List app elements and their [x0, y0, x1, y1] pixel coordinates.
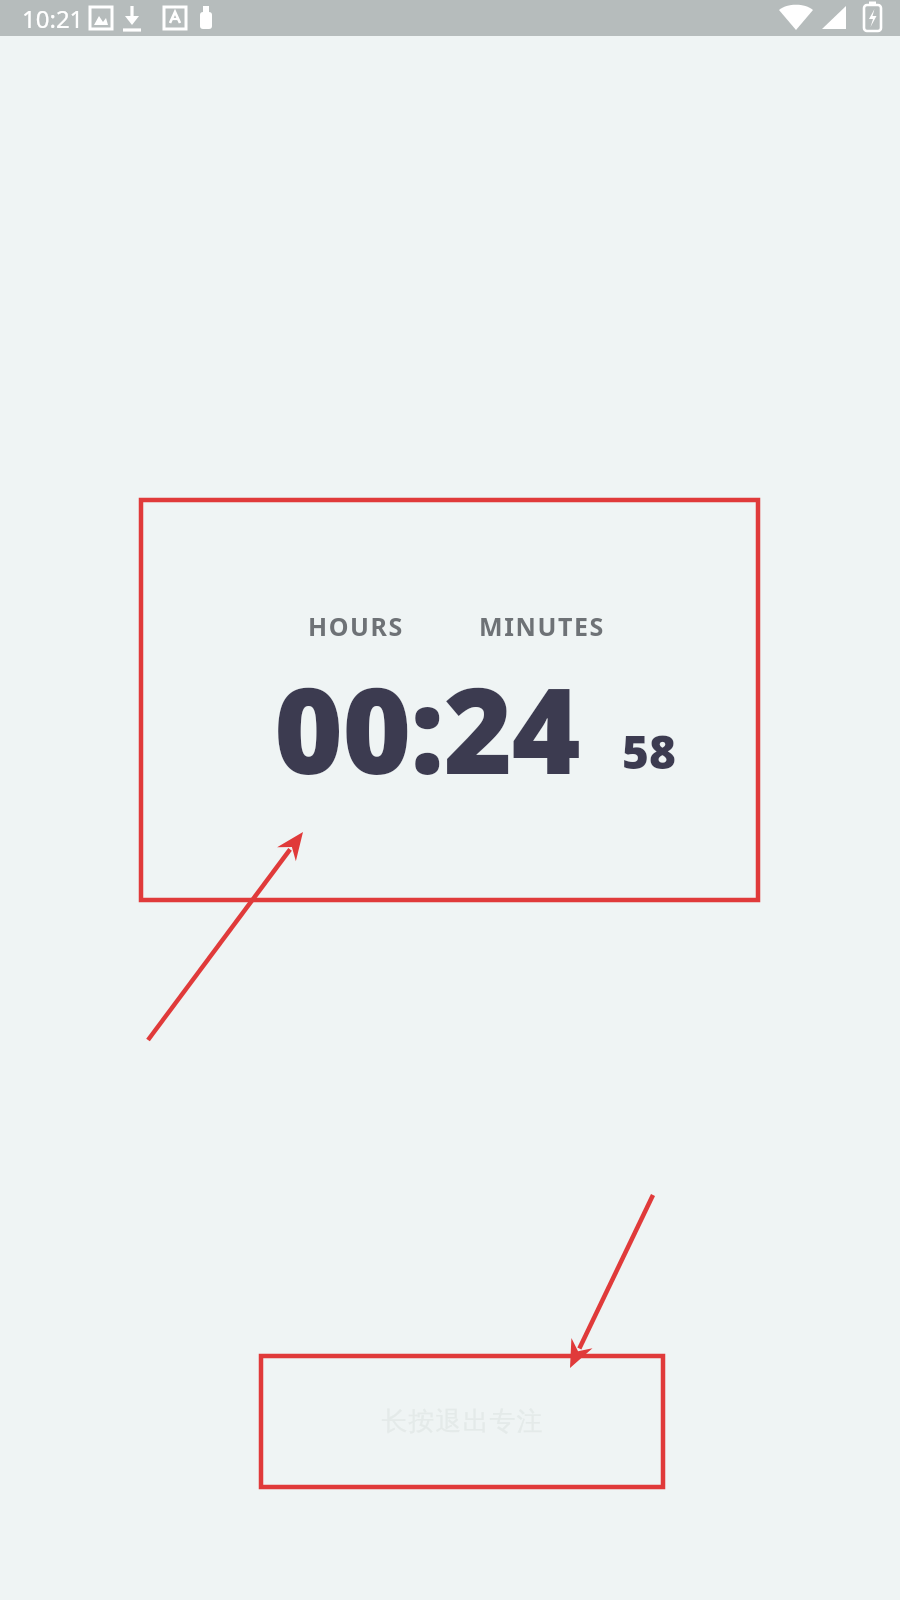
- staticText: 58: [622, 720, 676, 783]
- staticText: HOURS: [308, 609, 404, 643]
- staticText: 00:24: [274, 648, 580, 788]
- button[interactable]: 长按退出专注: [261, 1356, 663, 1487]
- staticText: MINUTES: [479, 609, 605, 643]
- staticText: 10:21: [22, 2, 84, 35]
- staticText: 长按退出专注: [381, 1405, 543, 1438]
